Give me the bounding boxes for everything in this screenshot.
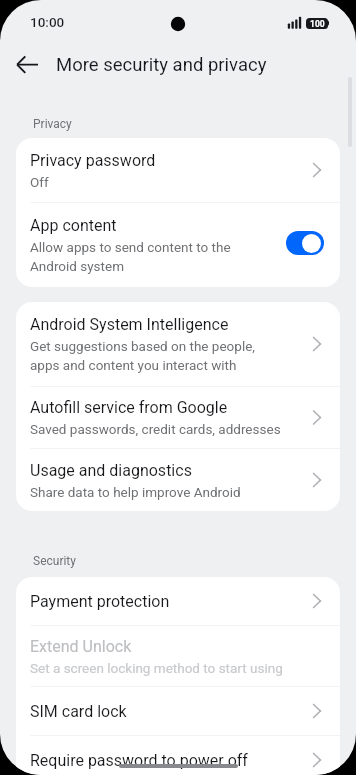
staticText: 10:00	[30, 14, 65, 30]
staticText: Extend Unlock	[30, 637, 132, 656]
staticText: Payment protection	[30, 592, 170, 611]
staticText: Privacy	[33, 117, 72, 131]
button[interactable]: App content toggle	[286, 231, 324, 255]
button[interactable]: Payment protection	[16, 577, 340, 625]
staticText: Off	[30, 174, 49, 190]
staticText: 100	[310, 19, 325, 29]
button[interactable]: SIM card lock	[16, 687, 340, 735]
staticText: Allow apps to send content to the Androi…	[30, 239, 278, 275]
button[interactable]: Privacy password	[16, 138, 340, 202]
button[interactable]: Usage and diagnostics	[16, 449, 340, 511]
staticText: Get suggestions based on the people, app…	[30, 338, 282, 374]
staticText: SIM card lock	[30, 702, 127, 721]
button[interactable]: Autofill service from Google	[16, 387, 340, 448]
staticText: Autofill service from Google	[30, 398, 228, 417]
staticText: More security and privacy	[56, 54, 267, 76]
staticText: Set a screen locking method to start usi…	[30, 660, 283, 676]
staticText: Saved passwords, credit cards, addresses	[30, 421, 281, 437]
button[interactable]: App content	[16, 203, 340, 287]
button[interactable]: Extend Unlock	[16, 626, 340, 686]
button[interactable]: Back	[5, 48, 49, 92]
staticText: Android System Intelligence	[30, 315, 229, 334]
staticText: Usage and diagnostics	[30, 461, 192, 480]
staticText: Require password to power off	[30, 751, 248, 770]
staticText: Share data to help improve Android	[30, 484, 241, 500]
button[interactable]: Require password to power off	[16, 736, 340, 775]
button[interactable]: Android System Intelligence	[16, 302, 340, 386]
staticText: App content	[30, 216, 117, 235]
staticText: Privacy password	[30, 151, 156, 170]
staticText: Security	[33, 554, 76, 568]
